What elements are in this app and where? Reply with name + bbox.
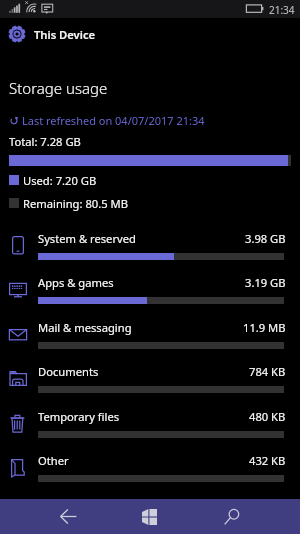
button[interactable]: Search [211, 499, 252, 534]
staticText: Apps & games [38, 275, 114, 290]
staticText: Storage usage [9, 78, 108, 98]
button[interactable]: Mail & messaging [0, 315, 300, 359]
staticText: System & reserved [38, 231, 136, 246]
button[interactable]: Apps & games [0, 270, 300, 314]
button[interactable]: Temporary files [0, 404, 300, 448]
staticText: Documents [38, 364, 99, 379]
staticText: Mail & messaging [38, 320, 132, 335]
staticText: Last refreshed on 04/07/2017 21:34 [22, 113, 205, 128]
staticText: 432 KB [249, 453, 286, 468]
staticText: 3.98 GB [245, 231, 286, 246]
button[interactable]: Start [129, 499, 170, 534]
staticText: 784 KB [249, 364, 286, 379]
staticText: 3.19 GB [245, 275, 286, 290]
button[interactable]: Documents [0, 359, 300, 403]
staticText: Used: 7.20 GB [23, 173, 97, 188]
staticText: Total: 7.28 GB [9, 134, 81, 149]
staticText: Remaining: 80.5 MB [23, 196, 128, 211]
staticText: This Device [34, 27, 96, 42]
button[interactable]: System & reserved [0, 226, 300, 270]
button[interactable]: Last refreshed on 04/07/2017 21:34 [9, 112, 300, 128]
staticText: 21:34 [269, 3, 295, 17]
staticText: 480 KB [249, 409, 286, 424]
button[interactable]: Other [0, 448, 300, 492]
staticText: Other [38, 453, 69, 468]
button[interactable]: This Device [0, 22, 300, 46]
staticText: 11.9 MB [243, 320, 286, 335]
staticText: Temporary files [38, 409, 120, 424]
button[interactable]: Back [48, 499, 89, 534]
